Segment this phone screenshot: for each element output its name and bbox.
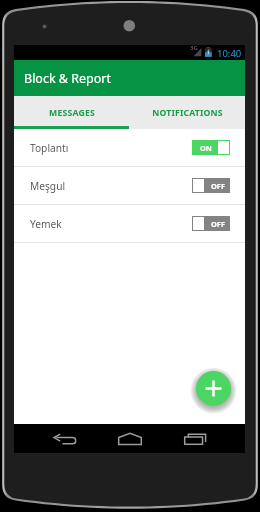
staticText: OFF: [211, 219, 225, 229]
button[interactable]: Toplantı: [14, 129, 245, 166]
button[interactable]: Toggle off: [192, 216, 230, 231]
button[interactable]: Yemek: [14, 205, 245, 242]
button[interactable]: Meşgul: [14, 167, 245, 204]
staticText: ON: [200, 143, 212, 153]
button[interactable]: Back: [14, 424, 64, 453]
staticText: 3G: [190, 44, 198, 52]
staticText: Yemek: [30, 217, 62, 231]
button[interactable]: Recent apps: [145, 424, 195, 453]
staticText: NOTIFICATIONS: [152, 107, 223, 119]
button[interactable]: MESSAGES: [14, 96, 129, 129]
staticText: Toplantı: [30, 141, 69, 155]
staticText: Meşgul: [30, 179, 66, 193]
button[interactable]: Add: [196, 371, 231, 406]
staticText: 10:40: [217, 47, 242, 60]
button[interactable]: Toggle on: [192, 140, 230, 155]
staticText: Block & Report: [24, 70, 111, 87]
staticText: MESSAGES: [49, 107, 95, 119]
button[interactable]: Toggle off: [192, 178, 230, 193]
staticText: OFF: [211, 181, 225, 191]
button[interactable]: NOTIFICATIONS: [129, 96, 245, 129]
button[interactable]: Home: [79, 424, 129, 453]
